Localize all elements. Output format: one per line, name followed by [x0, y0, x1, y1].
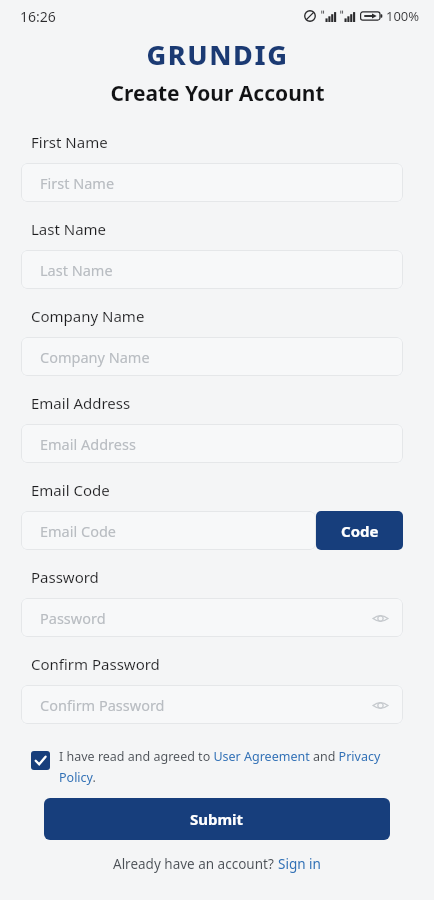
staticText: Already have an account?: [113, 855, 278, 873]
button[interactable]: Password: [21, 598, 403, 637]
button[interactable]: First Name: [21, 163, 403, 202]
button[interactable]: Show password: [367, 605, 393, 631]
staticText: Create Your Account: [110, 79, 325, 107]
staticText: Sign in: [278, 855, 321, 873]
button[interactable]: Show password: [367, 692, 393, 718]
staticText: Password: [31, 567, 99, 587]
staticText: Email Code: [31, 480, 110, 500]
staticText: 16:26: [20, 7, 56, 26]
other: Agree to terms checkbox: [31, 751, 50, 770]
staticText: Company Name: [40, 347, 150, 367]
staticText: GRUNDIG: [146, 36, 289, 68]
staticText: Code: [341, 521, 379, 541]
staticText: Email Address: [31, 393, 131, 413]
button[interactable]: Email Code: [21, 511, 316, 550]
staticText: I have read and agreed to User Agreement…: [59, 748, 403, 785]
staticText: Company Name: [31, 306, 145, 326]
staticText: Email Code: [40, 521, 117, 541]
button[interactable]: Last Name: [21, 250, 403, 289]
button[interactable]: Already have an account?: [113, 855, 321, 873]
button[interactable]: Email Address: [21, 424, 403, 463]
button[interactable]: Company Name: [21, 337, 403, 376]
button[interactable]: Agree to terms checkbox: [31, 748, 403, 785]
staticText: Last Name: [40, 260, 113, 280]
staticText: Email Address: [40, 434, 136, 454]
staticText: 100%: [386, 7, 420, 25]
staticText: Last Name: [31, 219, 107, 239]
button[interactable]: Submit: [44, 798, 390, 840]
button[interactable]: Code: [316, 511, 403, 550]
staticText: Password: [40, 608, 106, 628]
staticText: Submit: [190, 809, 244, 829]
staticText: First Name: [40, 173, 115, 193]
staticText: Confirm Password: [40, 695, 165, 715]
button[interactable]: Confirm Password: [21, 685, 403, 724]
staticText: Confirm Password: [31, 654, 160, 674]
staticText: First Name: [31, 132, 108, 152]
